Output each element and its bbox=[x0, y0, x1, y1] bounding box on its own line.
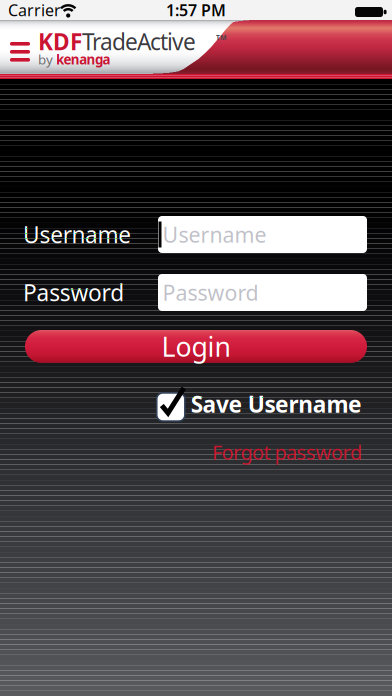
button[interactable]: Username bbox=[158, 216, 367, 253]
button[interactable]: Menu bbox=[10, 42, 30, 62]
staticText: TradeActive bbox=[82, 26, 196, 56]
button[interactable]: Login bbox=[25, 330, 367, 363]
staticText: Save Username bbox=[191, 389, 362, 419]
staticText: Password bbox=[162, 278, 258, 307]
staticText: Carrier bbox=[8, 0, 61, 21]
staticText: Forgot password bbox=[212, 439, 362, 465]
staticText: by bbox=[38, 50, 53, 68]
button[interactable]: Password bbox=[158, 274, 367, 311]
staticText: Username bbox=[162, 220, 266, 249]
staticText: TM bbox=[216, 33, 226, 42]
staticText: Login bbox=[161, 329, 230, 364]
staticText: kenanga bbox=[56, 50, 110, 68]
staticText: 1:57 PM bbox=[166, 0, 226, 21]
button[interactable]: Forgot password bbox=[212, 439, 362, 465]
staticText: Password bbox=[23, 277, 124, 307]
staticText: KDF bbox=[38, 26, 82, 56]
button[interactable]: Save Username bbox=[157, 387, 362, 421]
staticText: Username bbox=[23, 219, 131, 249]
